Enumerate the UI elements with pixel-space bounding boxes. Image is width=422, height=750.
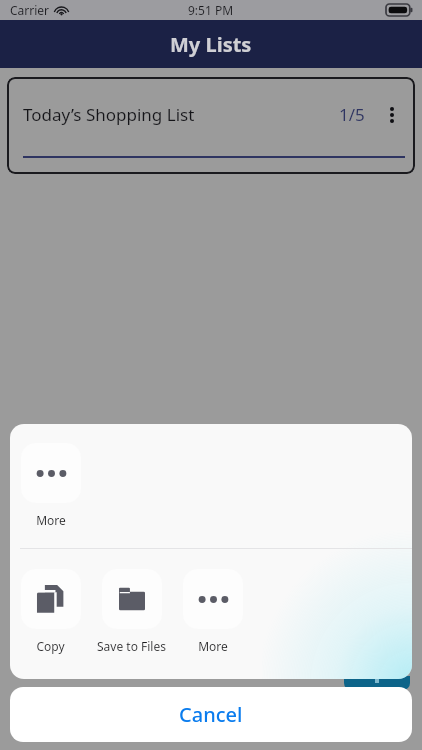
staticText: 1/5 — [339, 103, 365, 126]
staticText: More — [198, 638, 228, 654]
staticText: 9:51 PM — [188, 2, 234, 18]
button[interactable]: More — [10, 443, 91, 528]
button[interactable]: Today’s Shopping List — [7, 77, 415, 174]
staticText: Cancel — [179, 701, 243, 728]
staticText: Copy — [36, 638, 65, 654]
staticText: My Lists — [170, 31, 252, 58]
button[interactable]: Copy — [10, 569, 91, 654]
staticText: More — [36, 512, 66, 528]
button[interactable]: More — [172, 569, 253, 654]
button[interactable]: Cancel — [10, 687, 412, 742]
staticText: Today’s Shopping List — [23, 103, 195, 126]
staticText: Save to Files — [97, 638, 166, 654]
staticText: Carrier — [10, 2, 50, 18]
button[interactable]: Save to Files — [91, 569, 172, 654]
button[interactable]: More options — [381, 104, 403, 126]
